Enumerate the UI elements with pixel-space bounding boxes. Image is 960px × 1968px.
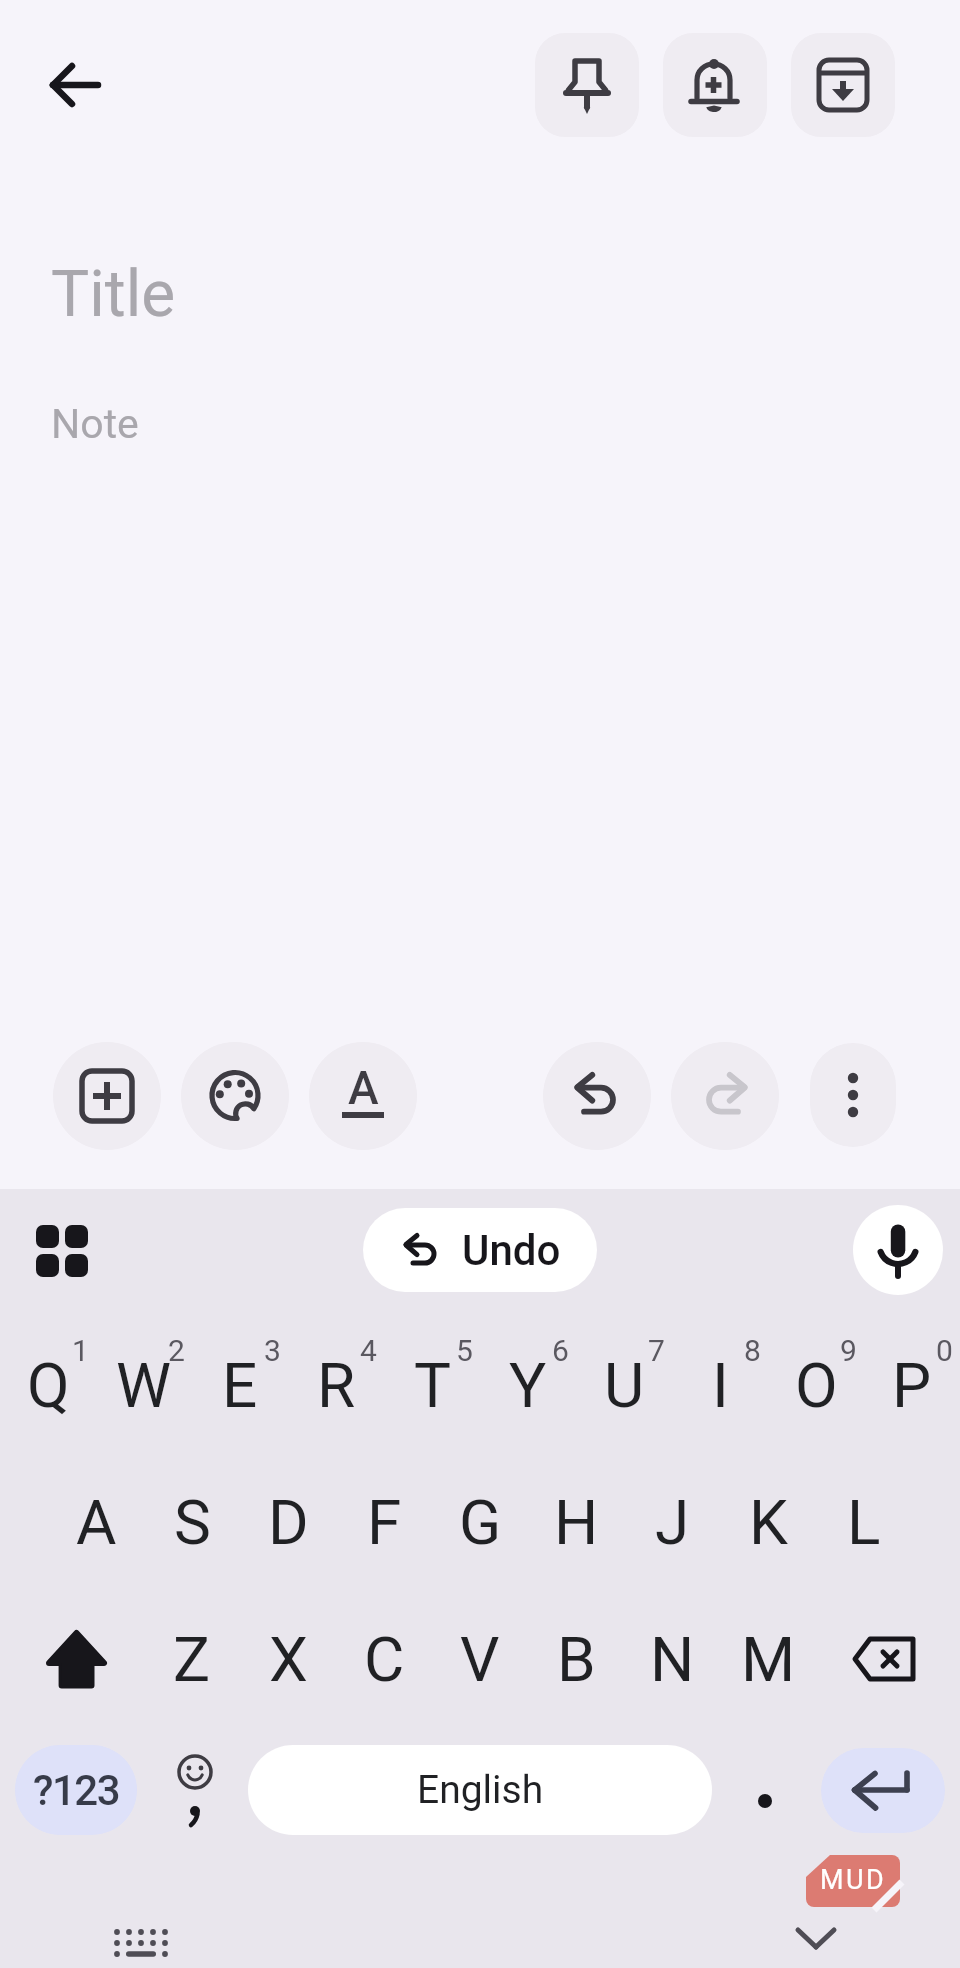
button[interactable]: O bbox=[768, 1317, 864, 1454]
button[interactable]: Undo bbox=[363, 1208, 597, 1292]
button[interactable]: W bbox=[96, 1317, 192, 1454]
button[interactable] bbox=[26, 1216, 98, 1288]
button[interactable] bbox=[663, 33, 767, 137]
button[interactable]: B bbox=[528, 1591, 624, 1728]
staticText: 7 bbox=[648, 1333, 665, 1368]
button[interactable] bbox=[53, 1042, 161, 1150]
button[interactable] bbox=[543, 1042, 651, 1150]
button[interactable]: S bbox=[144, 1454, 240, 1591]
button[interactable] bbox=[25, 1607, 129, 1711]
staticText: S bbox=[174, 1486, 211, 1559]
staticText: P bbox=[892, 1349, 932, 1422]
button[interactable] bbox=[832, 1607, 936, 1711]
button[interactable] bbox=[810, 1043, 896, 1147]
staticText: 3 bbox=[264, 1333, 281, 1368]
staticText: T bbox=[414, 1349, 451, 1422]
staticText: 9 bbox=[840, 1333, 857, 1368]
staticText: U bbox=[604, 1349, 645, 1422]
staticText: English bbox=[417, 1767, 544, 1813]
staticText: A bbox=[76, 1486, 117, 1559]
button[interactable]: J bbox=[624, 1454, 720, 1591]
button[interactable] bbox=[535, 33, 639, 137]
button[interactable] bbox=[30, 40, 120, 130]
staticText: 6 bbox=[552, 1333, 569, 1368]
button[interactable] bbox=[853, 1205, 943, 1295]
staticText: L bbox=[847, 1486, 881, 1559]
staticText: D bbox=[268, 1486, 309, 1559]
staticText: O bbox=[795, 1349, 838, 1422]
staticText: H bbox=[554, 1486, 599, 1559]
staticText: Undo bbox=[462, 1226, 561, 1275]
button[interactable]: English bbox=[248, 1745, 712, 1835]
staticText: 1 bbox=[72, 1333, 89, 1368]
staticText: C bbox=[364, 1623, 405, 1696]
button[interactable]: N bbox=[624, 1591, 720, 1728]
button[interactable]: ?123 bbox=[15, 1745, 137, 1835]
button[interactable]: K bbox=[720, 1454, 816, 1591]
button[interactable]: A bbox=[48, 1454, 144, 1591]
button[interactable]: Y bbox=[480, 1317, 576, 1454]
staticText: R bbox=[317, 1349, 356, 1422]
button[interactable]: X bbox=[240, 1591, 336, 1728]
button[interactable]: U bbox=[576, 1317, 672, 1454]
staticText: N bbox=[650, 1623, 695, 1696]
button[interactable] bbox=[105, 1918, 177, 1966]
button[interactable]: D bbox=[240, 1454, 336, 1591]
button[interactable] bbox=[791, 33, 895, 137]
staticText: J bbox=[655, 1486, 690, 1559]
staticText: 0 bbox=[936, 1333, 953, 1368]
staticText: 8 bbox=[744, 1333, 761, 1368]
staticText: Q bbox=[27, 1349, 70, 1422]
button[interactable] bbox=[730, 1743, 800, 1835]
button[interactable]: Z bbox=[144, 1591, 240, 1728]
button[interactable] bbox=[786, 1915, 846, 1963]
button[interactable]: H bbox=[528, 1454, 624, 1591]
staticText: E bbox=[222, 1349, 258, 1422]
button[interactable]: A bbox=[309, 1042, 417, 1150]
staticText: A bbox=[348, 1061, 379, 1115]
button[interactable] bbox=[181, 1042, 289, 1150]
button[interactable] bbox=[671, 1042, 779, 1150]
staticText: Y bbox=[509, 1349, 547, 1422]
button[interactable] bbox=[150, 1743, 240, 1835]
staticText: B bbox=[557, 1623, 596, 1696]
button[interactable]: T bbox=[384, 1317, 480, 1454]
staticText: M bbox=[741, 1623, 796, 1696]
button[interactable]: P bbox=[864, 1317, 960, 1454]
staticText: Title bbox=[51, 257, 176, 332]
staticText: MUD bbox=[820, 1864, 887, 1896]
staticText: I bbox=[712, 1349, 729, 1422]
staticText: 5 bbox=[456, 1333, 473, 1368]
button[interactable]: V bbox=[432, 1591, 528, 1728]
staticText: ?123 bbox=[33, 1766, 120, 1815]
button[interactable]: G bbox=[432, 1454, 528, 1591]
button[interactable]: Q bbox=[0, 1317, 96, 1454]
staticText: V bbox=[460, 1623, 500, 1696]
button[interactable]: E bbox=[192, 1317, 288, 1454]
staticText: Note bbox=[51, 400, 139, 448]
staticText: K bbox=[749, 1486, 788, 1559]
staticText: F bbox=[367, 1486, 402, 1559]
staticText: G bbox=[459, 1486, 502, 1559]
button[interactable]: M bbox=[720, 1591, 816, 1728]
button[interactable] bbox=[821, 1748, 945, 1833]
button[interactable]: L bbox=[816, 1454, 912, 1591]
button[interactable]: C bbox=[336, 1591, 432, 1728]
button[interactable]: I bbox=[672, 1317, 768, 1454]
staticText: W bbox=[116, 1349, 172, 1422]
button[interactable]: F bbox=[336, 1454, 432, 1591]
button[interactable]: R bbox=[288, 1317, 384, 1454]
staticText: 2 bbox=[168, 1333, 185, 1368]
staticText: 4 bbox=[360, 1333, 377, 1368]
staticText: X bbox=[269, 1623, 308, 1696]
staticText: Z bbox=[173, 1623, 211, 1696]
